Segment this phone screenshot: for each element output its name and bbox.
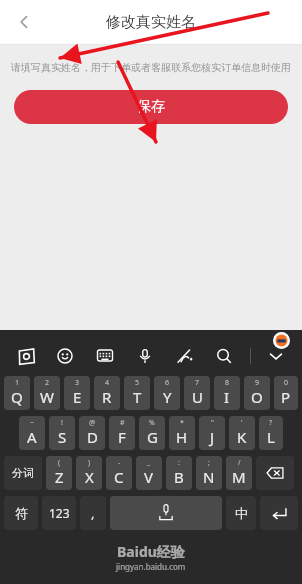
staticText: ( — [58, 458, 61, 468]
staticText: 分词 — [12, 466, 34, 480]
button[interactable]: _ — [136, 456, 162, 490]
staticText: 6 — [165, 378, 170, 388]
staticText: F — [118, 427, 126, 447]
button[interactable]: ) — [76, 456, 102, 490]
staticText: G — [147, 427, 158, 447]
button[interactable]: 6 — [154, 376, 180, 410]
button[interactable]: " — [199, 416, 225, 450]
button[interactable]: 9 — [244, 376, 270, 410]
button[interactable]: 3 — [64, 376, 90, 410]
button[interactable]: Backspace — [256, 456, 294, 490]
button[interactable]: 中 — [226, 496, 256, 530]
staticText: W — [40, 387, 54, 407]
staticText: 1 — [15, 378, 20, 388]
staticText: B — [174, 467, 184, 487]
staticText: # — [120, 418, 125, 428]
button[interactable]: Search — [210, 342, 238, 370]
button[interactable]: 0 — [274, 376, 298, 410]
staticText: N — [203, 467, 215, 487]
button[interactable]: : — [166, 456, 192, 490]
staticText: I — [224, 387, 230, 407]
button[interactable]: , — [80, 496, 106, 530]
staticText: X — [85, 467, 94, 487]
staticText: ; — [208, 458, 210, 468]
button[interactable]: ' — [229, 416, 255, 450]
staticText: - — [118, 458, 121, 468]
button[interactable]: ; — [196, 456, 222, 490]
staticText: / — [238, 458, 241, 468]
button[interactable]: ~ — [19, 416, 45, 450]
staticText: L — [267, 427, 275, 447]
staticText: 2 — [45, 378, 50, 388]
button[interactable]: 7 — [184, 376, 210, 410]
staticText: S — [58, 427, 67, 447]
staticText: Q — [11, 387, 23, 407]
button[interactable]: 符 — [4, 496, 38, 530]
button[interactable]: ? — [259, 416, 283, 450]
button[interactable]: Space — [110, 496, 222, 530]
staticText: P — [281, 387, 291, 407]
button[interactable]: 4 — [94, 376, 120, 410]
staticText: _ — [147, 458, 151, 468]
staticText: M — [232, 467, 246, 487]
staticText: 中 — [235, 505, 248, 521]
staticText: 9 — [255, 378, 260, 388]
staticText: 保存 — [137, 98, 165, 116]
staticText: 8 — [225, 378, 230, 388]
staticText: J — [210, 427, 215, 447]
staticText: A — [27, 427, 37, 447]
staticText: O — [251, 387, 263, 407]
staticText: ' — [241, 418, 243, 428]
staticText: 5 — [135, 378, 140, 388]
staticText: jingyan.baidu.com — [116, 561, 186, 572]
button[interactable]: 8 — [214, 376, 240, 410]
staticText: " — [211, 418, 214, 428]
staticText: : — [178, 458, 180, 468]
button[interactable]: # — [109, 416, 135, 450]
staticText: 0 — [284, 378, 289, 388]
staticText: V — [144, 467, 154, 487]
staticText: 4 — [105, 378, 110, 388]
staticText: 符 — [15, 505, 28, 521]
staticText: 请填写真实姓名，用于下单或者客服联系您核实订单信息时使用 — [8, 61, 294, 74]
button[interactable]: Voice input — [131, 342, 159, 370]
staticText: ~ — [30, 418, 35, 428]
button[interactable]: Emoji — [51, 342, 79, 370]
button[interactable]: Assistant — [273, 332, 290, 349]
staticText: % — [149, 418, 155, 428]
button[interactable]: Hide keyboard — [262, 342, 290, 370]
staticText: ! — [61, 418, 63, 428]
button[interactable]: Back — [8, 6, 40, 38]
button[interactable]: 1 — [4, 376, 30, 410]
staticText: 修改真实姓名 — [106, 13, 196, 32]
button[interactable]: Handwriting — [170, 342, 198, 370]
staticText: R — [102, 387, 112, 407]
staticText: U — [192, 387, 203, 407]
button[interactable]: 保存 — [14, 90, 288, 124]
button[interactable]: / — [226, 456, 252, 490]
button[interactable]: * — [169, 416, 195, 450]
button[interactable]: ! — [49, 416, 75, 450]
button[interactable]: @ — [79, 416, 105, 450]
staticText: E — [73, 387, 82, 407]
staticText: C — [114, 467, 124, 487]
button[interactable]: ( — [46, 456, 72, 490]
staticText: ) — [88, 458, 91, 468]
button[interactable]: Keyboard layout — [91, 342, 119, 370]
staticText: Y — [163, 387, 172, 407]
staticText: * — [180, 418, 184, 428]
button[interactable]: 2 — [34, 376, 60, 410]
staticText: @ — [89, 418, 96, 428]
button[interactable]: 分词 — [4, 456, 42, 490]
staticText: D — [87, 427, 98, 447]
staticText: T — [133, 387, 142, 407]
button[interactable]: % — [139, 416, 165, 450]
button[interactable]: Sogou input — [12, 342, 40, 370]
staticText: ? — [269, 418, 273, 428]
staticText: Baidu经验 — [117, 542, 185, 561]
staticText: K — [237, 427, 247, 447]
button[interactable]: 5 — [124, 376, 150, 410]
button[interactable]: Enter — [260, 496, 298, 530]
button[interactable]: 123 — [42, 496, 76, 530]
button[interactable]: - — [106, 456, 132, 490]
